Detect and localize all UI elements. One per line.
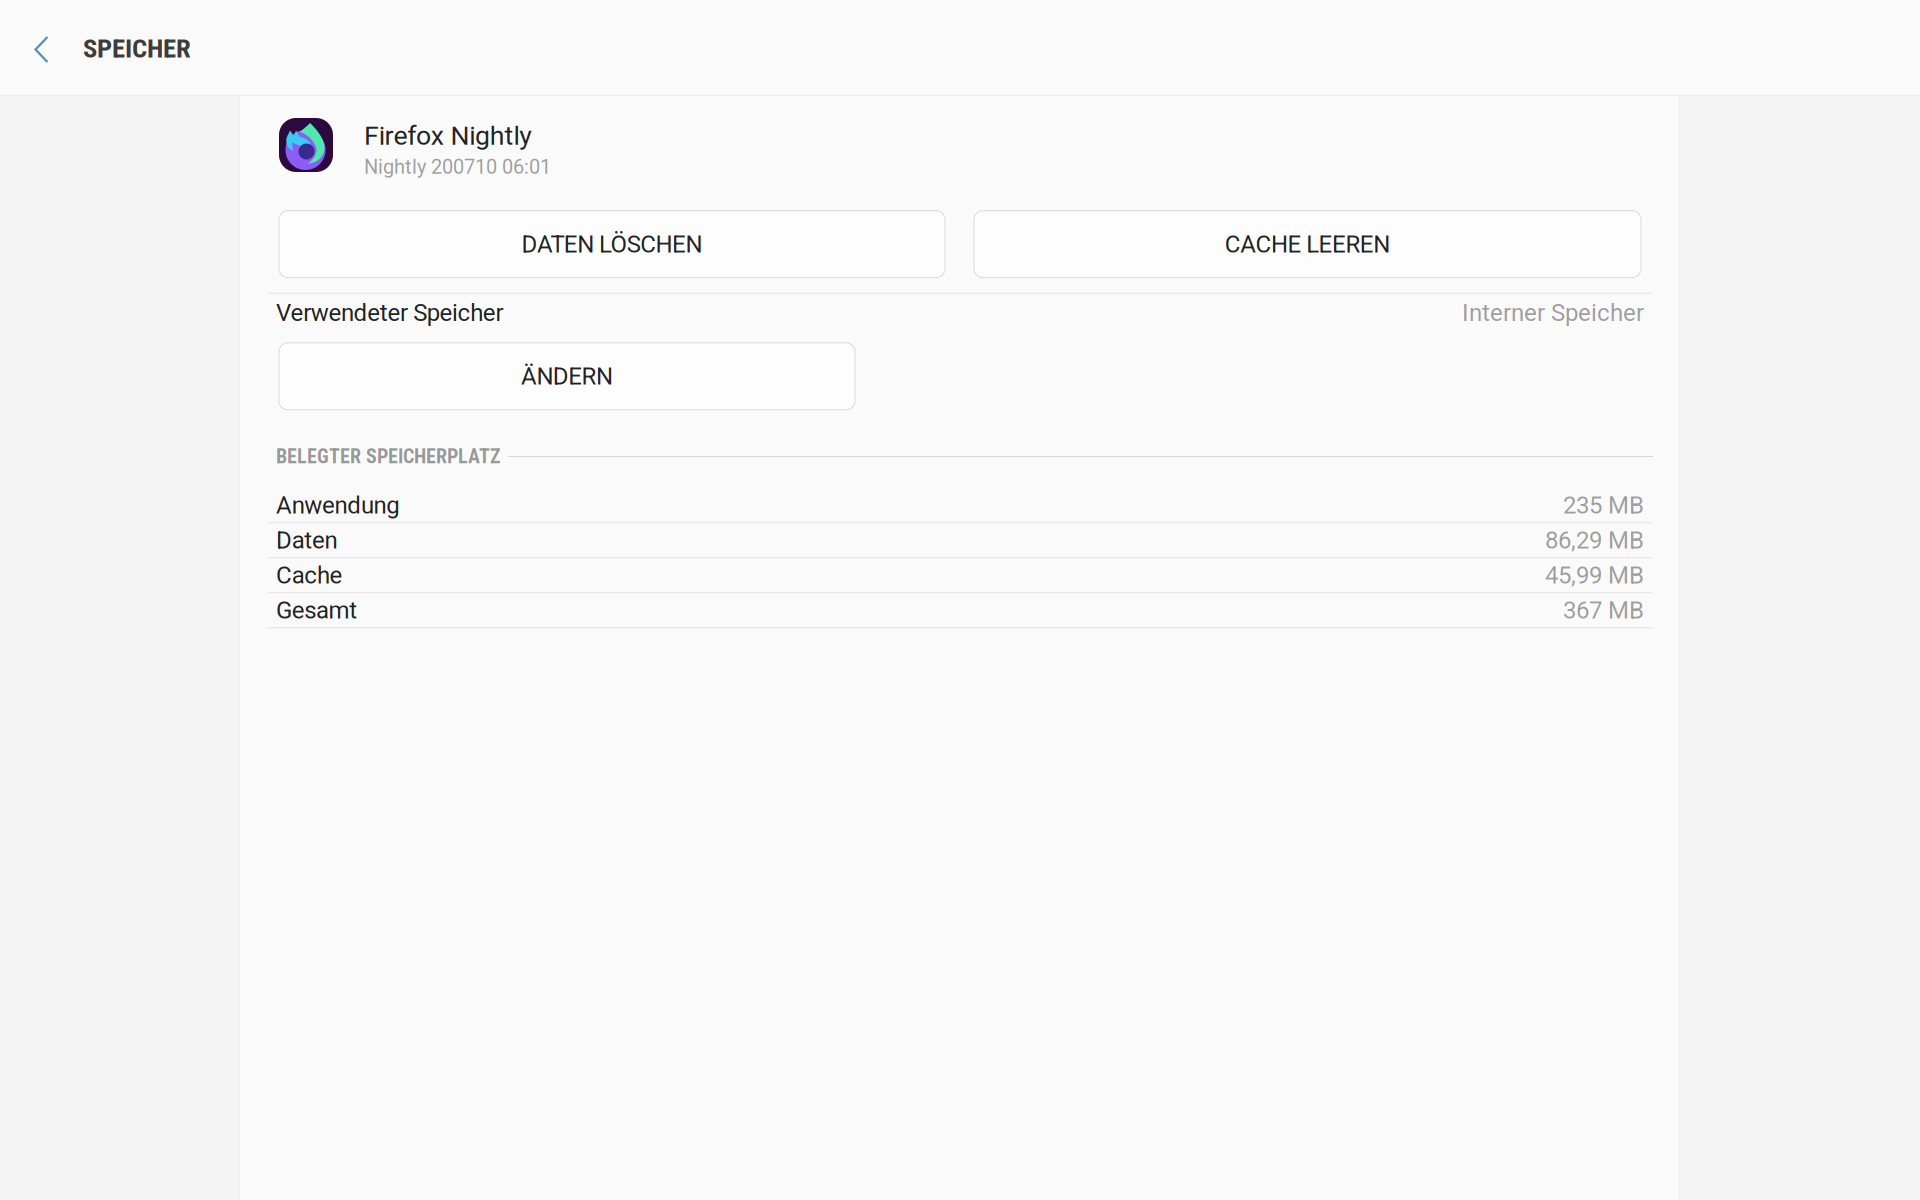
staticText: Nightly 200710 06:01 [364,155,551,179]
button[interactable]: CACHE LEEREN [974,211,1641,278]
staticText: Anwendung [276,491,399,519]
staticText: Firefox Nightly [364,120,532,151]
staticText: 367 MB [1563,596,1644,624]
staticText: BELEGTER SPEICHERPLATZ [276,445,501,468]
staticText: 86,29 MB [1545,526,1644,554]
staticText: Daten [276,526,338,554]
staticText: Interner Speicher [1462,299,1644,327]
staticText: Gesamt [276,596,357,624]
staticText: ÄNDERN [521,362,613,390]
staticText: 235 MB [1563,491,1644,519]
staticText: 45,99 MB [1545,561,1644,589]
staticText: DATEN LÖSCHEN [522,230,702,258]
staticText: Verwendeter Speicher [276,299,503,327]
button[interactable]: DATEN LÖSCHEN [279,211,945,278]
button[interactable]: Back [0,0,83,95]
staticText: SPEICHER [83,33,191,64]
staticText: Cache [276,561,343,589]
staticText: CACHE LEEREN [1225,230,1390,258]
button[interactable]: ÄNDERN [279,343,855,410]
